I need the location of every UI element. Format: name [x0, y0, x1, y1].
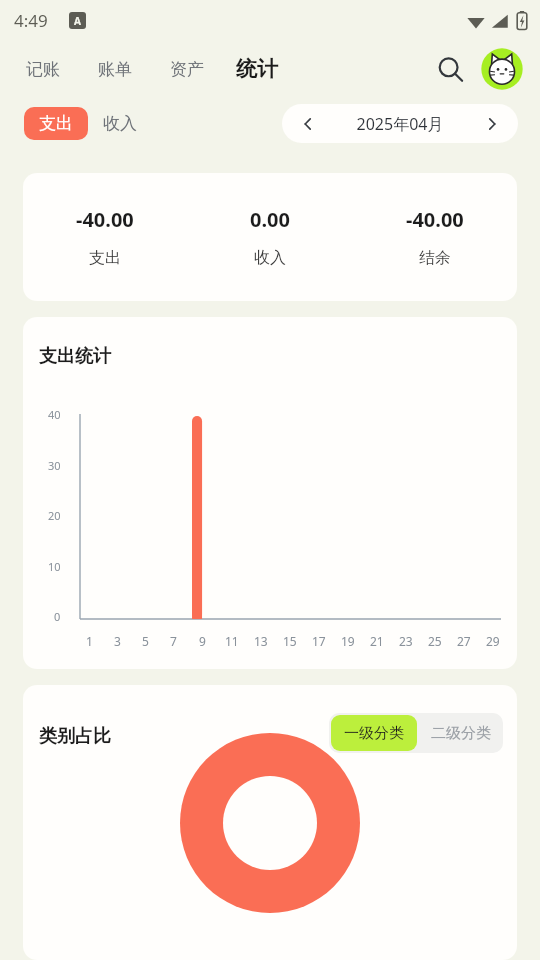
- button[interactable]: Previous month: [282, 104, 334, 143]
- staticText: 收入: [254, 248, 286, 268]
- staticText: 资产: [170, 59, 204, 80]
- button[interactable]: 支出: [24, 107, 88, 140]
- button[interactable]: -40.00: [23, 173, 517, 301]
- staticText: 二级分类: [431, 724, 491, 743]
- staticText: 4:49: [14, 9, 48, 32]
- button[interactable]: 账单: [96, 54, 134, 85]
- staticText: 27: [457, 633, 471, 649]
- staticText: 29: [486, 633, 500, 649]
- staticText: 30: [48, 458, 61, 473]
- staticText: 40: [48, 407, 61, 422]
- staticText: 2025年04月: [334, 113, 466, 135]
- staticText: 结余: [419, 248, 451, 268]
- staticText: 13: [254, 633, 268, 649]
- button[interactable]: 一级分类: [331, 715, 417, 751]
- button[interactable]: 二级分类: [419, 713, 503, 753]
- staticText: 支出: [89, 248, 121, 268]
- staticText: 25: [428, 633, 442, 649]
- staticText: 账单: [98, 59, 132, 80]
- staticText: 一级分类: [344, 724, 404, 743]
- staticText: 11: [225, 633, 239, 649]
- staticText: 1: [86, 633, 93, 649]
- staticText: A: [74, 14, 81, 28]
- staticText: 支出: [39, 113, 73, 134]
- staticText: 收入: [103, 113, 137, 134]
- button[interactable]: 统计: [234, 51, 280, 87]
- staticText: 3: [114, 633, 121, 649]
- staticText: 20: [48, 508, 61, 523]
- staticText: 0.00: [250, 206, 290, 233]
- staticText: 9: [199, 633, 206, 649]
- staticText: 7: [170, 633, 177, 649]
- staticText: 15: [283, 633, 297, 649]
- staticText: -40.00: [406, 206, 464, 233]
- staticText: 17: [312, 633, 326, 649]
- staticText: 5: [142, 633, 149, 649]
- button[interactable]: 资产: [168, 54, 206, 85]
- staticText: -40.00: [76, 206, 134, 233]
- staticText: 0: [54, 609, 61, 624]
- staticText: 统计: [236, 56, 278, 82]
- button[interactable]: Search: [428, 47, 472, 91]
- staticText: 23: [399, 633, 413, 649]
- button[interactable]: 记账: [24, 54, 62, 85]
- staticText: 19: [341, 633, 355, 649]
- staticText: 10: [48, 559, 61, 574]
- staticText: 支出统计: [39, 345, 111, 368]
- button[interactable]: Next month: [466, 104, 518, 143]
- staticText: 类别占比: [39, 725, 111, 748]
- button[interactable]: 收入: [95, 107, 145, 140]
- staticText: 21: [370, 633, 384, 649]
- button[interactable]: Profile: [478, 45, 526, 93]
- staticText: 记账: [26, 59, 60, 80]
